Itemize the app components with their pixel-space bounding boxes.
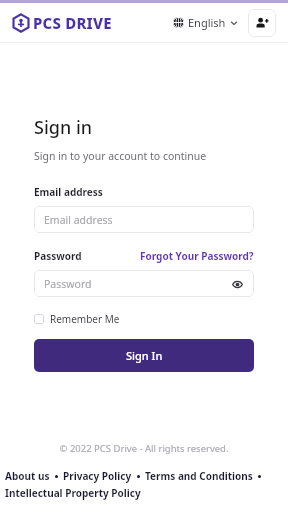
staticText: About us [5, 469, 50, 483]
button[interactable]: Show password [230, 277, 244, 291]
button[interactable]: Terms and Conditions [145, 469, 253, 483]
staticText: Terms and Conditions [145, 469, 253, 483]
staticText: Forgot Your Password? [140, 249, 254, 263]
staticText: Sign in to your account to continue [34, 149, 207, 163]
button[interactable]: About us [5, 469, 50, 483]
staticText: Sign In [126, 348, 163, 363]
button[interactable]: English [171, 11, 240, 34]
staticText: Privacy Policy [63, 469, 132, 483]
staticText: Password [34, 249, 82, 263]
staticText: Password [44, 277, 92, 291]
button[interactable]: Password [34, 270, 254, 297]
staticText: PCS DRIVE [33, 13, 112, 33]
button[interactable]: Remember Me [34, 311, 120, 327]
staticText: Sign in [34, 115, 93, 140]
staticText: English [188, 15, 226, 30]
button[interactable]: Intellectual Property Policy [5, 486, 141, 500]
staticText: Email address [44, 213, 113, 227]
button[interactable]: Privacy Policy [63, 469, 132, 483]
button[interactable]: Forgot Your Password? [140, 249, 254, 263]
button[interactable]: PCS DRIVE [12, 13, 112, 33]
button[interactable]: Email address [34, 206, 254, 233]
staticText: © 2022 PCS Drive - All rights reserved. [0, 442, 288, 455]
staticText: Intellectual Property Policy [5, 486, 141, 500]
button[interactable]: Sign up [248, 9, 276, 37]
staticText: Email address [34, 185, 103, 199]
staticText: Remember Me [50, 312, 120, 326]
button[interactable]: Sign In [34, 339, 254, 372]
